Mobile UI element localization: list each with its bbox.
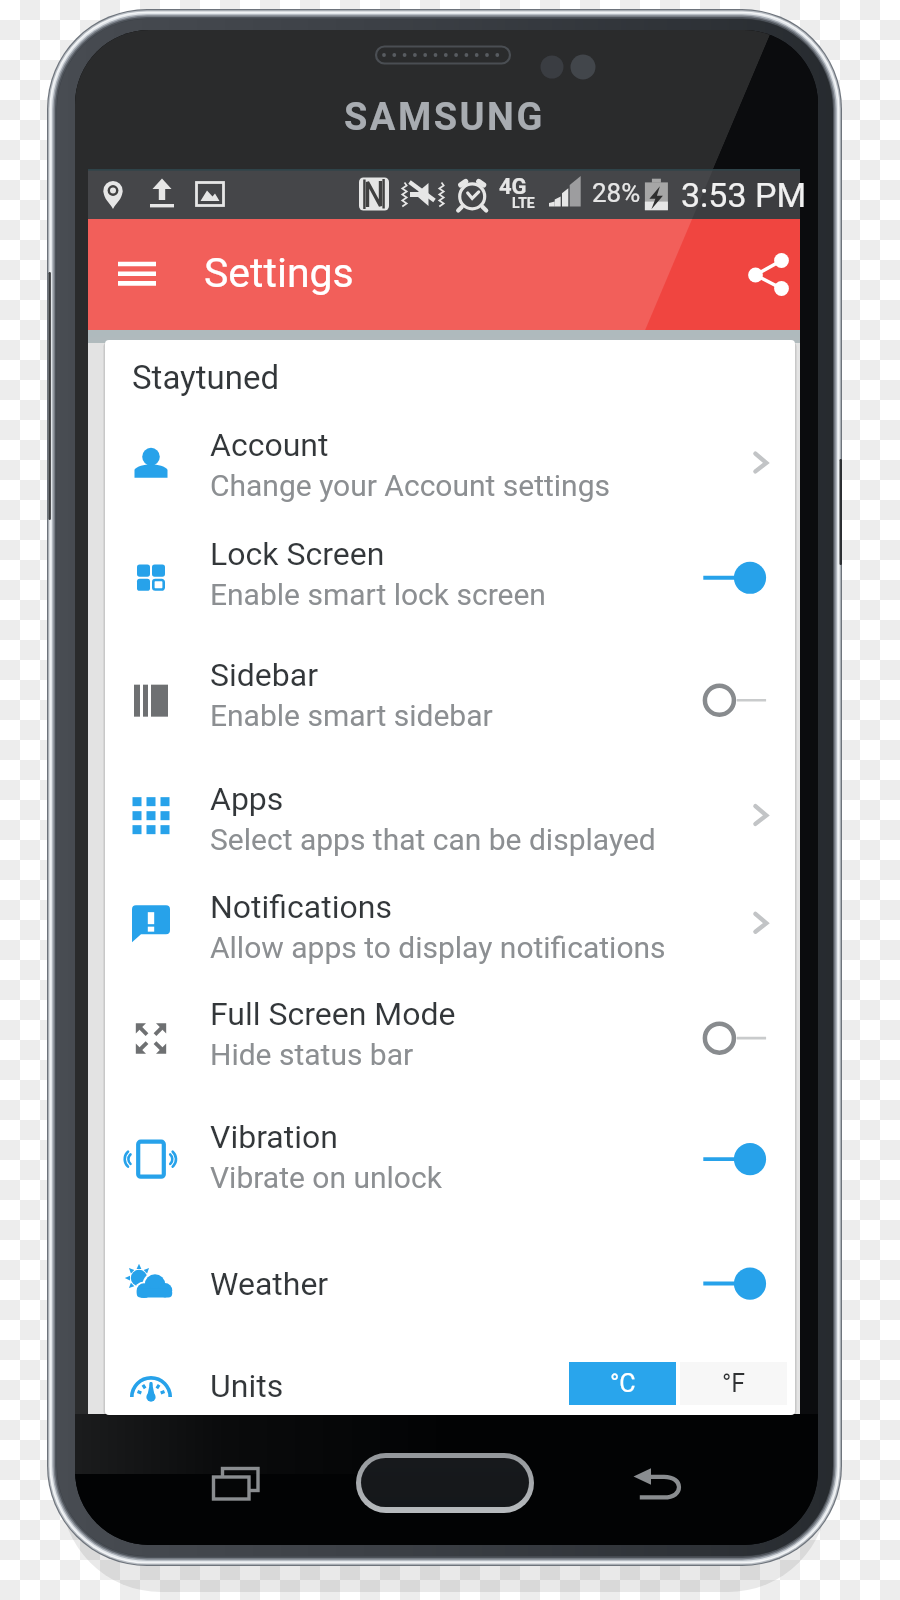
button[interactable]: °F	[680, 1362, 787, 1405]
staticText: 4G	[499, 174, 527, 200]
button[interactable]: °C	[569, 1362, 676, 1405]
staticText: Notifications	[210, 888, 392, 926]
button[interactable]: Apps	[105, 764, 795, 876]
button[interactable]: Share	[737, 243, 799, 305]
staticText: Change your Account settings	[210, 468, 611, 503]
staticText: °C	[610, 1369, 636, 1398]
staticText: Allow apps to display notifications	[210, 930, 666, 965]
button[interactable]: Sidebar	[105, 640, 795, 752]
staticText: °F	[722, 1369, 746, 1398]
staticText: LTE	[512, 195, 535, 211]
staticText: Settings	[204, 249, 354, 297]
staticText: Apps	[210, 780, 284, 818]
staticText: Select apps that can be displayed	[210, 822, 656, 857]
staticText: Enable smart lock screen	[210, 577, 546, 612]
staticText: Hide status bar	[210, 1037, 414, 1072]
button[interactable]: Units	[105, 1351, 795, 1415]
staticText: Account	[210, 426, 329, 464]
button[interactable]: Vibration	[105, 1102, 795, 1214]
button[interactable]: Open navigation menu	[104, 243, 166, 305]
button[interactable]: Notifications	[105, 872, 795, 984]
button[interactable]: Account	[105, 410, 795, 522]
staticText: Staytuned	[132, 358, 280, 397]
staticText: Sidebar	[210, 656, 319, 694]
staticText: SAMSUNG	[344, 95, 545, 140]
staticText: Weather	[210, 1265, 329, 1303]
staticText: 28%	[592, 178, 641, 208]
staticText: Lock Screen	[210, 535, 385, 573]
staticText: 3:53 PM	[681, 175, 807, 215]
button[interactable]: Lock Screen	[105, 519, 795, 631]
button[interactable]: Weather	[105, 1249, 795, 1323]
staticText: Enable smart sidebar	[210, 698, 493, 733]
staticText: Vibration	[210, 1118, 338, 1156]
staticText: Vibrate on unlock	[210, 1160, 442, 1195]
staticText: Full Screen Mode	[210, 995, 456, 1033]
button[interactable]: Full Screen Mode	[105, 979, 795, 1091]
staticText: Units	[210, 1367, 284, 1405]
